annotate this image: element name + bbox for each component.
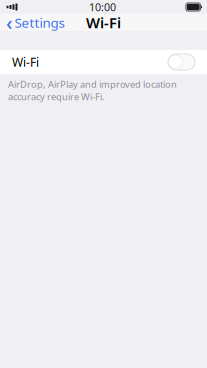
staticText: Wi-Fi bbox=[86, 13, 121, 32]
staticText: Wi-Fi bbox=[12, 54, 39, 70]
staticText: Settings bbox=[14, 14, 64, 31]
button[interactable]: ‹ bbox=[2, 6, 68, 39]
staticText: AirDrop, AirPlay and improved location a… bbox=[8, 78, 177, 103]
staticText: ‹ bbox=[6, 9, 13, 36]
staticText: 10:00 bbox=[89, 0, 116, 14]
button[interactable]: Wi-Fi bbox=[0, 50, 207, 74]
